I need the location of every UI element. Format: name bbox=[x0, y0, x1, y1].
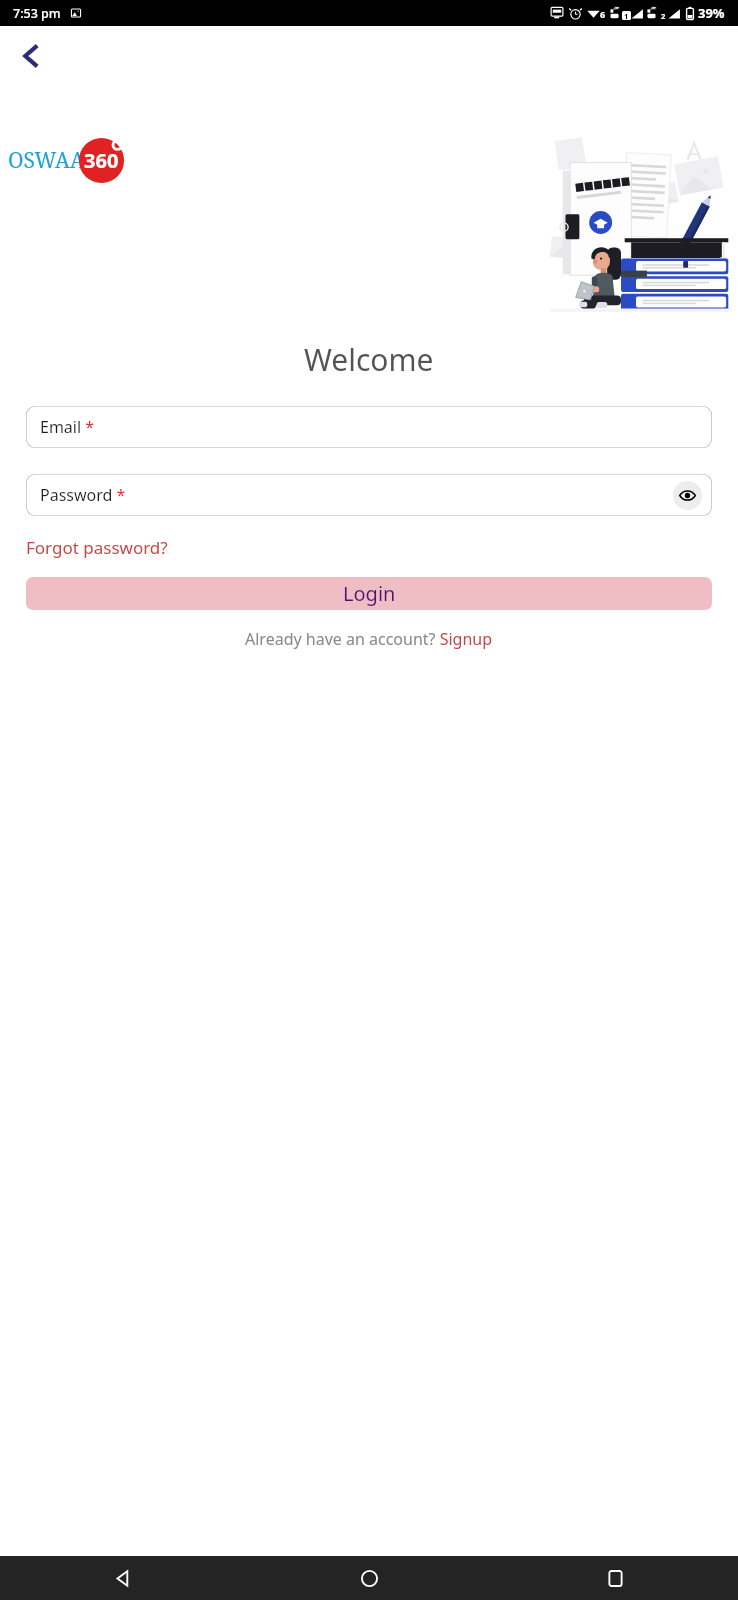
staticText: Welcome bbox=[304, 339, 434, 380]
button[interactable]: Email * bbox=[26, 406, 712, 448]
button[interactable]: Home bbox=[246, 1556, 492, 1600]
staticText: Password * bbox=[40, 484, 126, 506]
staticText: Login bbox=[343, 580, 396, 607]
button[interactable]: Back bbox=[6, 30, 58, 82]
button[interactable]: Login bbox=[26, 577, 712, 610]
staticText: Forgot password? bbox=[26, 536, 168, 559]
button[interactable]: Show password bbox=[673, 481, 702, 510]
staticText: 2 bbox=[661, 11, 666, 20]
button[interactable]: Already have an account? Signup bbox=[245, 628, 493, 650]
staticText: 39% bbox=[698, 4, 725, 22]
staticText: 7:53 pm bbox=[13, 5, 61, 22]
button[interactable]: Recent apps bbox=[492, 1556, 738, 1600]
staticText: 6 bbox=[600, 8, 606, 20]
button[interactable]: Back bbox=[0, 1556, 246, 1600]
staticText: 360 bbox=[84, 147, 119, 174]
staticText: OSWAAL bbox=[8, 146, 98, 175]
button[interactable]: Password * bbox=[26, 474, 712, 516]
staticText: Already have an account? Signup bbox=[245, 628, 493, 650]
button[interactable]: Forgot password? bbox=[26, 536, 168, 559]
staticText: Email * bbox=[40, 416, 95, 438]
staticText: 1 bbox=[624, 11, 629, 20]
